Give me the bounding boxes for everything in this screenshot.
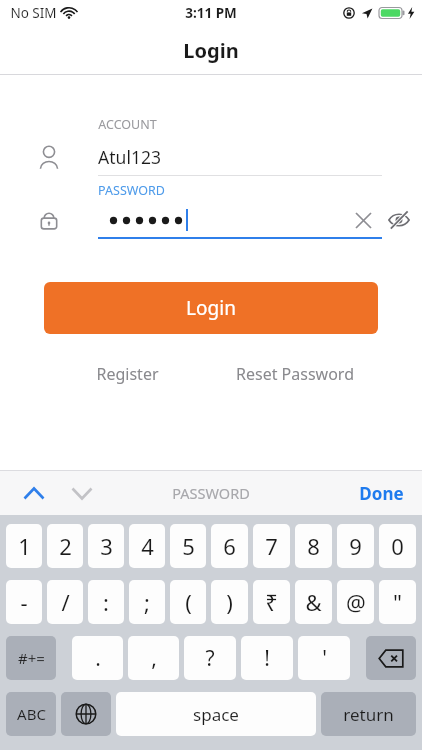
staticText: 3 xyxy=(100,531,113,561)
button[interactable]: ₹ xyxy=(253,580,290,624)
button[interactable]: . xyxy=(72,636,123,680)
button[interactable]: - xyxy=(6,580,42,624)
staticText: Reset Password xyxy=(236,363,354,385)
staticText: . xyxy=(95,644,101,673)
button[interactable]: space xyxy=(116,692,316,736)
button[interactable]: 4 xyxy=(129,524,165,568)
button[interactable]: ' xyxy=(298,636,350,680)
staticText: 0 xyxy=(391,531,404,561)
staticText: & xyxy=(305,587,322,617)
staticText: 2 xyxy=(59,531,72,561)
button[interactable]: #+= xyxy=(6,636,56,680)
button[interactable]: ) xyxy=(211,580,248,624)
staticText: / xyxy=(61,587,70,617)
button[interactable]: Backspace xyxy=(366,636,416,680)
staticText: " xyxy=(393,587,402,617)
staticText: PASSWORD xyxy=(98,182,165,199)
staticText: 1 xyxy=(18,531,31,561)
button[interactable]: / xyxy=(47,580,83,624)
staticText: : xyxy=(103,587,109,617)
staticText: Done xyxy=(359,482,404,505)
button[interactable]: 6 xyxy=(211,524,248,568)
button[interactable]: 1 xyxy=(6,524,42,568)
button[interactable]: Change keyboard xyxy=(61,692,111,736)
button[interactable]: ! xyxy=(241,636,293,680)
staticText: ₹ xyxy=(265,587,278,617)
button[interactable]: Clear password xyxy=(348,205,378,235)
staticText: 8 xyxy=(307,531,320,561)
staticText: Login xyxy=(183,37,239,64)
staticText: Register xyxy=(96,363,159,385)
staticText: 7 xyxy=(265,531,278,561)
button[interactable]: 3 xyxy=(88,524,124,568)
staticText: ' xyxy=(322,644,327,673)
staticText: Atul123 xyxy=(98,145,161,169)
staticText: ? xyxy=(205,644,215,673)
staticText: ACCOUNT xyxy=(98,116,157,133)
staticText: ; xyxy=(144,587,150,617)
button[interactable]: & xyxy=(295,580,332,624)
button[interactable]: 9 xyxy=(337,524,374,568)
staticText: #+= xyxy=(18,648,45,668)
staticText: 4 xyxy=(141,531,154,561)
staticText: Login xyxy=(186,295,236,321)
staticText: 6 xyxy=(223,531,236,561)
staticText: return xyxy=(343,703,394,726)
button[interactable]: Show password xyxy=(382,203,416,237)
button[interactable]: Register xyxy=(44,363,211,385)
button[interactable]: Done xyxy=(359,482,404,505)
button[interactable]: ; xyxy=(129,580,165,624)
button[interactable]: ? xyxy=(184,636,236,680)
button[interactable]: , xyxy=(128,636,179,680)
staticText: , xyxy=(151,644,157,673)
staticText: No SIM xyxy=(10,4,57,22)
button[interactable]: 8 xyxy=(295,524,332,568)
button[interactable]: Reset Password xyxy=(211,363,378,385)
button[interactable]: 0 xyxy=(379,524,416,568)
button[interactable]: Next field xyxy=(62,473,102,513)
staticText: ) xyxy=(226,587,233,617)
button[interactable]: ( xyxy=(170,580,206,624)
staticText: ( xyxy=(185,587,192,617)
staticText: ! xyxy=(264,644,270,673)
button[interactable]: ABC xyxy=(6,692,56,736)
staticText: - xyxy=(20,587,28,617)
staticText: PASSWORD xyxy=(172,483,250,503)
staticText: 9 xyxy=(349,531,362,561)
staticText: @ xyxy=(346,587,366,617)
staticText: ABC xyxy=(17,704,46,724)
button[interactable]: Login xyxy=(44,282,378,334)
button[interactable]: @ xyxy=(337,580,374,624)
staticText: space xyxy=(193,703,239,726)
button[interactable]: 7 xyxy=(253,524,290,568)
button[interactable]: " xyxy=(379,580,416,624)
button[interactable]: return xyxy=(321,692,416,736)
button[interactable]: Previous field xyxy=(14,473,54,513)
button[interactable]: 5 xyxy=(170,524,206,568)
staticText: 3:11 PM xyxy=(185,4,237,22)
staticText: 5 xyxy=(182,531,195,561)
button[interactable]: : xyxy=(88,580,124,624)
button[interactable]: 2 xyxy=(47,524,83,568)
